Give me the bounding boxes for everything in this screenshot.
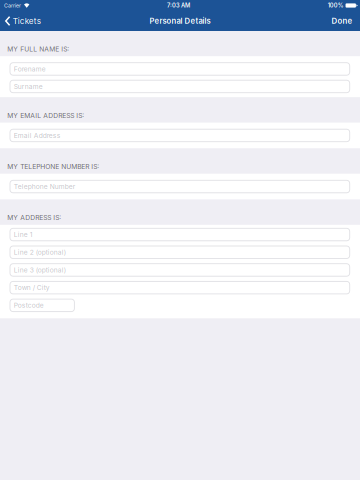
- staticText: MY FULL NAME IS:: [7, 45, 69, 53]
- staticText: Postcode: [14, 301, 44, 309]
- button[interactable]: Postcode: [10, 299, 74, 312]
- staticText: 7:03 AM: [167, 2, 190, 9]
- button[interactable]: Line 2 (optional): [10, 246, 350, 258]
- staticText: Tickets: [13, 16, 41, 26]
- staticText: MY EMAIL ADDRESS IS:: [7, 111, 84, 119]
- staticText: 100%: [328, 2, 344, 9]
- button[interactable]: Forename: [10, 63, 350, 75]
- staticText: Line 2 (optional): [14, 248, 66, 256]
- staticText: Email Address: [14, 131, 61, 139]
- button[interactable]: Done: [324, 11, 360, 31]
- button[interactable]: Tickets: [0, 11, 47, 31]
- staticText: Forename: [14, 65, 46, 73]
- button[interactable]: Email Address: [10, 129, 350, 142]
- button[interactable]: Line 1: [10, 228, 350, 241]
- button[interactable]: Surname: [10, 80, 350, 93]
- button[interactable]: Line 3 (optional): [10, 264, 350, 276]
- button[interactable]: Town / City: [10, 281, 350, 294]
- staticText: Telephone Number: [14, 182, 76, 191]
- staticText: Town / City: [14, 284, 50, 292]
- staticText: Line 1: [14, 230, 33, 239]
- button[interactable]: Telephone Number: [10, 180, 350, 193]
- staticText: MY ADDRESS IS:: [7, 214, 61, 222]
- staticText: Personal Details: [149, 16, 210, 26]
- staticText: Carrier: [4, 2, 21, 9]
- staticText: Surname: [14, 82, 43, 90]
- staticText: Done: [331, 16, 352, 26]
- staticText: MY TELEPHONE NUMBER IS:: [7, 162, 99, 171]
- staticText: Line 3 (optional): [14, 266, 66, 274]
